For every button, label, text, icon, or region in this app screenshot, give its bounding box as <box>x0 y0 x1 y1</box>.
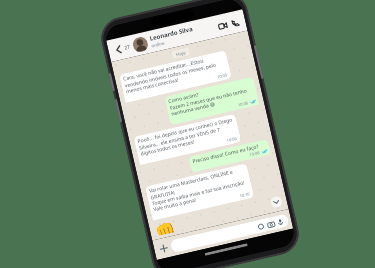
staticText: Hoje <box>175 49 186 57</box>
staticText: Vai rolar uma Masterclass, ONLINE e GRAT… <box>148 166 250 213</box>
staticText: 10:05 <box>217 72 228 79</box>
button[interactable]: Cara, você não vai acreditar... Estou ve… <box>119 50 232 103</box>
button[interactable]: Back <box>111 42 126 56</box>
button[interactable]: Sticker <box>170 213 289 253</box>
button[interactable]: Profile photo <box>131 36 149 54</box>
button[interactable]: Vai rolar uma Masterclass, ONLINE e GRAT… <box>145 163 254 221</box>
button[interactable]: Voice call <box>227 15 243 30</box>
button[interactable]: Camera <box>266 220 275 229</box>
staticText: 27 <box>123 43 131 52</box>
staticText: 10:06 <box>226 136 238 143</box>
staticText: Cara, você não vai acreditar... Estou ve… <box>122 53 227 95</box>
staticText: Preciso disso! Como eu faço? <box>192 143 260 165</box>
button[interactable]: Sticker <box>256 222 266 231</box>
staticText: Leonardo Silva <box>149 25 194 43</box>
button[interactable]: Pooô... foi depois que eu conheci o Dieg… <box>133 114 241 165</box>
staticText: online <box>151 39 166 48</box>
staticText: 10:10 <box>239 191 251 198</box>
button[interactable]: Leonardo Silva <box>149 20 217 48</box>
staticText: Como assim? Fazem 2 meses que eu não ten… <box>168 79 255 118</box>
staticText: 10:06 <box>237 100 249 107</box>
button[interactable]: Preciso disso! Como eu faço? <box>188 139 271 173</box>
staticText: 👊 <box>153 219 176 236</box>
button[interactable]: Como assim? Fazem 2 meses que eu não ten… <box>164 77 259 125</box>
staticText: Pooô... foi depois que eu conheci o Dieg… <box>137 116 237 158</box>
button[interactable]: Attach <box>156 241 170 255</box>
button[interactable]: Video call <box>214 18 230 33</box>
button[interactable]: Voice message <box>276 217 285 227</box>
staticText: 10:08 <box>249 150 261 157</box>
button[interactable]: Scroll to bottom <box>270 195 283 209</box>
